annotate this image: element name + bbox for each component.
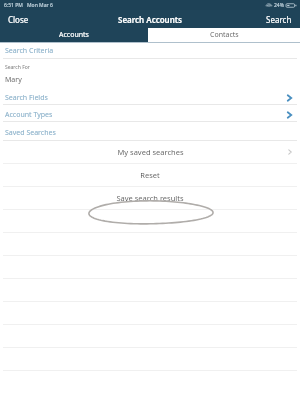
staticText: 24% — [274, 2, 284, 9]
staticText: 6:51 PM — [4, 2, 23, 9]
button[interactable]: Accounts — [0, 28, 148, 42]
staticText: Mon Mar 6 — [27, 2, 53, 9]
button[interactable]: Save search results — [0, 187, 300, 209]
staticText: My saved searches — [117, 147, 184, 157]
button[interactable]: Reset — [0, 164, 300, 186]
staticText: Save search results — [116, 193, 184, 203]
staticText: Search Criteria — [5, 46, 54, 56]
staticText: Saved Searches — [5, 128, 56, 138]
button[interactable]: Search — [258, 11, 300, 28]
button[interactable]: Account Types — [0, 109, 300, 122]
button[interactable]: My saved searches — [0, 141, 300, 163]
staticText: Search — [266, 14, 292, 25]
staticText: Contacts — [210, 30, 239, 40]
staticText: Search Fields — [5, 93, 48, 103]
staticText: Search Accounts — [118, 14, 183, 25]
staticText: Account Types — [5, 110, 53, 120]
button[interactable]: Search Fields — [0, 92, 300, 105]
staticText: Accounts — [59, 30, 89, 40]
staticText: Close — [8, 14, 29, 25]
button[interactable]: Contacts — [148, 28, 300, 42]
staticText: Mary — [5, 75, 22, 85]
staticText: Search For — [5, 64, 30, 71]
staticText: Reset — [140, 170, 160, 180]
button[interactable]: Close — [0, 11, 37, 28]
